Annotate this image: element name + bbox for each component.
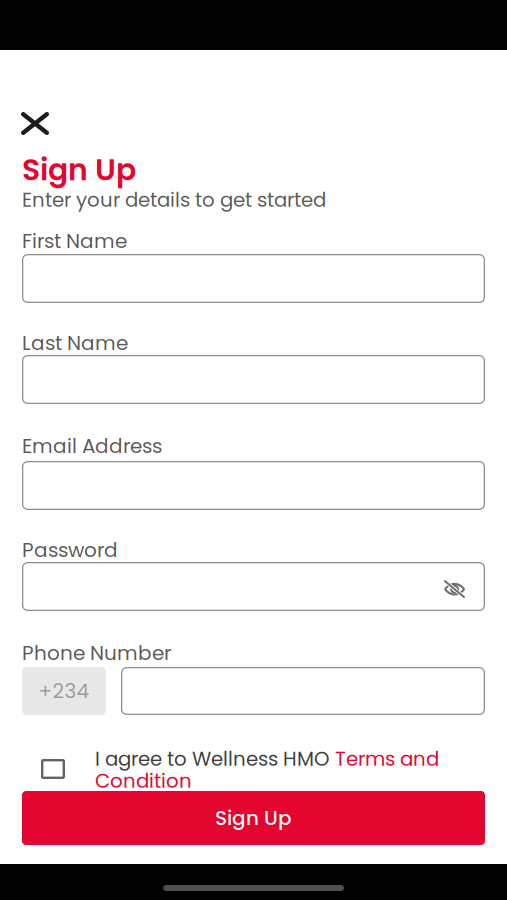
staticText: I agree to Wellness HMO xyxy=(95,745,335,773)
staticText: Sign Up xyxy=(22,149,136,191)
staticText: +234 xyxy=(38,677,89,705)
staticText: Terms and xyxy=(335,745,439,773)
button[interactable]: Show password xyxy=(438,574,471,604)
button[interactable]: Email Address xyxy=(22,461,485,510)
staticText: Email Address xyxy=(22,432,162,460)
button[interactable]: First Name xyxy=(22,254,485,303)
button[interactable]: Terms and xyxy=(335,745,439,773)
button[interactable]: Condition xyxy=(95,767,192,795)
staticText: First Name xyxy=(22,227,127,255)
button[interactable]: Phone Number xyxy=(121,667,485,715)
staticText: Password xyxy=(22,536,118,564)
button[interactable]: I agree to Wellness HMO Terms and Condit… xyxy=(41,759,65,779)
staticText: Condition xyxy=(95,767,192,795)
staticText: Sign Up xyxy=(215,804,292,832)
button[interactable]: Sign Up xyxy=(22,791,485,845)
staticText: Phone Number xyxy=(22,639,171,667)
staticText: Enter your details to get started xyxy=(22,186,326,214)
button[interactable]: Password xyxy=(22,562,485,611)
staticText: Last Name xyxy=(22,329,128,357)
button[interactable]: Last Name xyxy=(22,355,485,404)
button[interactable]: Close xyxy=(21,112,49,135)
button[interactable]: +234 xyxy=(22,667,106,715)
